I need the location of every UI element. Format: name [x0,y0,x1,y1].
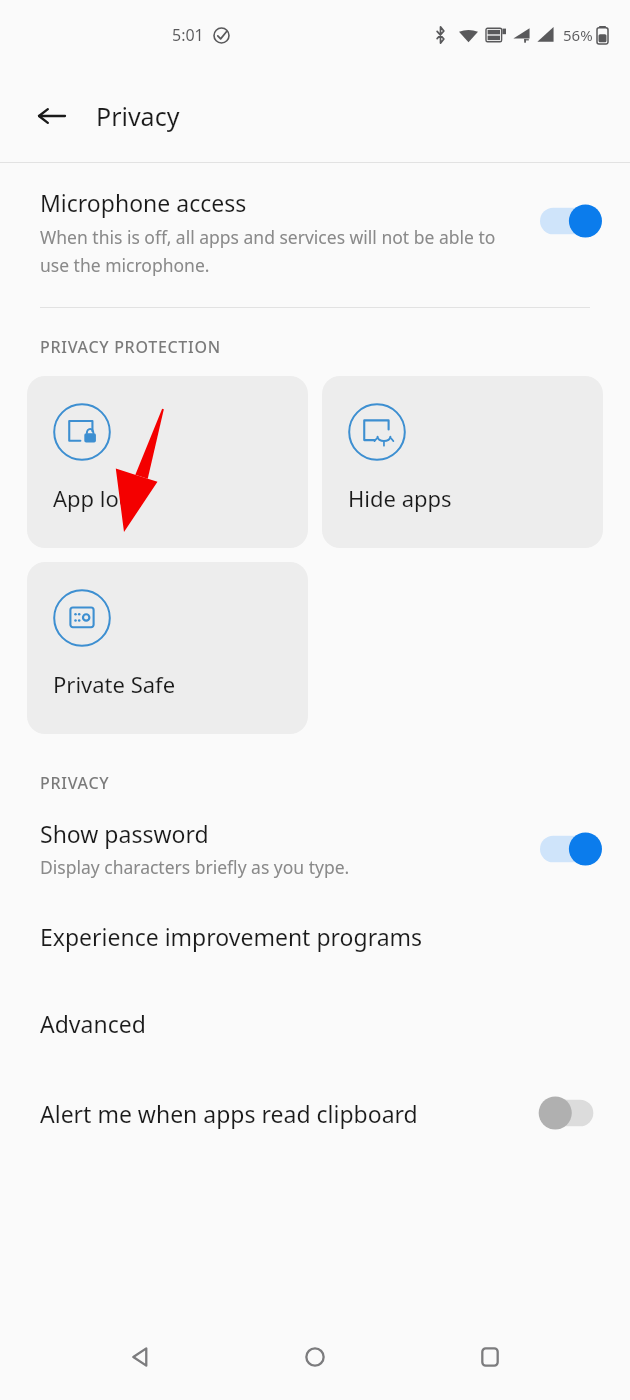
button[interactable]: Back [24,88,80,144]
button[interactable]: Show password [0,808,630,889]
button[interactable]: Advanced [0,1002,630,1045]
staticText: 5:01 [172,24,204,46]
staticText: Alert me when apps read clipboard [40,1098,524,1129]
button[interactable]: Hide apps [322,376,603,548]
button[interactable]: Toggle on [540,203,602,239]
button[interactable]: Alert me when apps read clipboard [0,1087,630,1139]
staticText: Private Safe [53,669,176,699]
staticText: Experience improvement programs [40,921,423,952]
staticText: PRIVACY PROTECTION [40,336,221,358]
button[interactable]: Back [107,1323,175,1391]
button[interactable]: Toggle on [540,831,602,867]
staticText: Hide apps [348,483,452,513]
button[interactable]: Experience improvement programs [0,915,630,958]
button[interactable]: Toggle off [540,1095,602,1131]
button[interactable]: Home [281,1323,349,1391]
button[interactable]: Private Safe [27,562,308,734]
staticText: Show password [40,818,209,849]
staticText: 56% [563,25,593,45]
button[interactable]: App lock [27,376,308,548]
staticText: When this is off, all apps and services … [40,225,520,277]
button[interactable]: Microphone access [0,163,630,293]
staticText: PRIVACY [40,772,110,794]
staticText: Microphone access [40,187,247,218]
staticText: Advanced [40,1008,146,1039]
staticText: App lock [53,483,142,513]
staticText: Privacy [96,99,180,133]
button[interactable]: Recent apps [456,1323,524,1391]
staticText: Display characters briefly as you type. [40,855,350,879]
